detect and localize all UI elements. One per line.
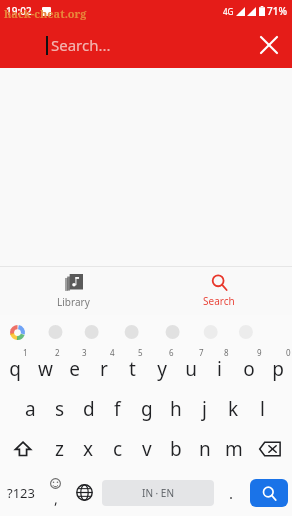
button[interactable]: b	[161, 429, 190, 469]
staticText: ,	[54, 489, 58, 508]
button[interactable]: n	[190, 429, 219, 469]
staticText: 7	[199, 347, 204, 358]
staticText: 6	[169, 347, 174, 358]
button[interactable]: .	[217, 469, 246, 516]
staticText: x	[83, 436, 94, 462]
button[interactable]: d	[74, 389, 103, 429]
button[interactable]: l	[248, 389, 277, 429]
button[interactable]: ?123	[0, 469, 41, 516]
staticText: r	[100, 356, 108, 382]
staticText: 4G	[223, 6, 234, 17]
staticText: o	[243, 356, 255, 382]
button[interactable]: v	[132, 429, 161, 469]
button[interactable]: q	[0, 349, 30, 389]
button[interactable]: g	[132, 389, 161, 429]
staticText: 71%	[267, 4, 287, 18]
staticText: y	[157, 356, 167, 382]
staticText: Search	[203, 294, 235, 308]
staticText: .	[229, 483, 234, 503]
button[interactable]: e	[60, 349, 89, 389]
button[interactable]: u	[176, 349, 205, 389]
staticText: f	[114, 396, 121, 422]
button[interactable]: Change language	[70, 469, 99, 516]
staticText: w	[38, 356, 53, 382]
button[interactable]: Search	[250, 479, 288, 507]
button[interactable]: m	[219, 429, 248, 469]
staticText: 9	[257, 347, 262, 358]
button[interactable]: x	[74, 429, 103, 469]
button[interactable]: Backspace	[248, 429, 292, 469]
button[interactable]: k	[219, 389, 248, 429]
button[interactable]: Library	[0, 267, 146, 315]
staticText: s	[55, 396, 65, 422]
button[interactable]: i	[205, 349, 234, 389]
staticText: v	[142, 436, 152, 462]
staticText: hack-cheat.org	[4, 6, 87, 21]
staticText: 2	[55, 347, 60, 358]
staticText: q	[9, 356, 21, 382]
staticText: m	[225, 436, 243, 462]
staticText: 1	[23, 347, 28, 358]
staticText: c	[113, 436, 123, 462]
staticText: g	[141, 396, 153, 422]
button[interactable]: Space	[102, 480, 214, 506]
staticText: 5	[138, 347, 143, 358]
staticText: Library	[57, 295, 90, 309]
staticText: k	[228, 396, 239, 422]
button[interactable]: p	[263, 349, 292, 389]
button[interactable]: w	[30, 349, 60, 389]
button[interactable]: Shift	[0, 429, 45, 469]
staticText: j	[202, 396, 207, 422]
button[interactable]: Close search	[246, 22, 292, 68]
staticText: h	[170, 396, 182, 422]
staticText: z	[55, 436, 64, 462]
button[interactable]: f	[103, 389, 132, 429]
staticText: d	[83, 396, 95, 422]
staticText: l	[260, 396, 265, 422]
button[interactable]: a	[16, 389, 45, 429]
button[interactable]: j	[190, 389, 219, 429]
staticText: p	[272, 356, 284, 382]
staticText: i	[217, 356, 222, 382]
button[interactable]: o	[234, 349, 263, 389]
staticText: Search...	[51, 35, 246, 55]
button[interactable]: h	[161, 389, 190, 429]
staticText: 19:02	[6, 4, 32, 18]
button[interactable]: y	[147, 349, 176, 389]
staticText: 4	[110, 347, 115, 358]
button[interactable]: ,	[41, 469, 70, 516]
button[interactable]: t	[118, 349, 147, 389]
button[interactable]: z	[45, 429, 74, 469]
button[interactable]: c	[103, 429, 132, 469]
button[interactable]: r	[89, 349, 118, 389]
staticText: t	[129, 356, 136, 382]
staticText: b	[170, 436, 182, 462]
staticText: a	[25, 396, 36, 422]
button[interactable]: Search	[146, 267, 292, 315]
staticText: 8	[224, 347, 229, 358]
staticText: 0	[286, 347, 291, 358]
staticText: u	[185, 356, 197, 382]
button[interactable]: s	[45, 389, 74, 429]
staticText: IN · EN	[142, 486, 175, 500]
staticText: ?123	[7, 484, 35, 502]
staticText: 3	[82, 347, 87, 358]
staticText: e	[69, 356, 80, 382]
staticText: n	[199, 436, 211, 462]
